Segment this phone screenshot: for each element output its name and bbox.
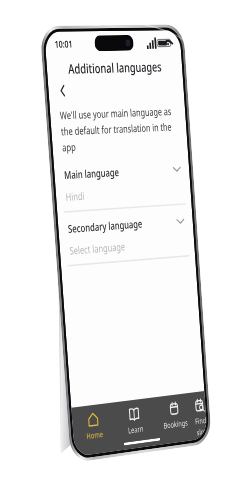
staticText: Hindi xyxy=(65,182,182,204)
button[interactable]: Bookings xyxy=(154,398,195,434)
staticText: 10:01 xyxy=(54,37,73,51)
button[interactable]: Home xyxy=(72,408,115,445)
button[interactable]: Main language xyxy=(54,161,192,222)
staticText: Main language xyxy=(64,162,174,182)
button[interactable]: Find slot xyxy=(193,397,208,440)
staticText: Learn xyxy=(128,423,144,436)
staticText: Home xyxy=(85,428,104,442)
staticText: Additional languages xyxy=(67,57,163,77)
button[interactable]: Learn xyxy=(113,403,156,440)
staticText: Bookings xyxy=(163,417,188,432)
staticText: Secondary language xyxy=(67,214,177,236)
staticText: Find slot xyxy=(194,415,208,438)
button[interactable]: Secondary language xyxy=(58,213,196,276)
staticText: We'll use your main language as the defa… xyxy=(59,103,179,154)
staticText: Select language xyxy=(69,234,186,258)
button[interactable]: Back xyxy=(53,78,73,103)
